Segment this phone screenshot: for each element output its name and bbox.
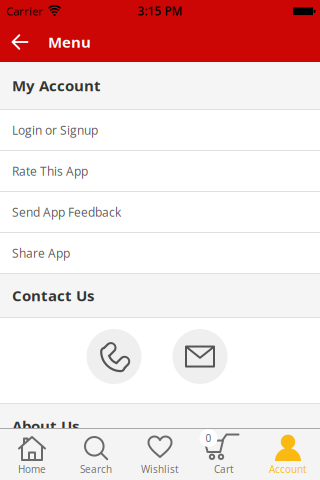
staticText: Share App bbox=[12, 245, 70, 261]
button[interactable]: Account bbox=[256, 429, 320, 480]
button[interactable]: Send App Feedback bbox=[0, 192, 320, 233]
button[interactable]: 0 bbox=[192, 429, 256, 480]
button[interactable]: Share App bbox=[0, 233, 320, 274]
staticText: 0 bbox=[205, 431, 211, 445]
staticText: Wishlist bbox=[141, 462, 179, 476]
button[interactable]: Search bbox=[64, 429, 128, 480]
button[interactable]: Home bbox=[0, 429, 64, 480]
staticText: Search bbox=[80, 462, 112, 476]
staticText: 3:15 PM bbox=[137, 3, 182, 19]
staticText: Contact Us bbox=[12, 285, 94, 306]
button[interactable]: Email us bbox=[172, 329, 227, 384]
staticText: Carrier bbox=[6, 3, 43, 19]
staticText: Home bbox=[18, 462, 46, 476]
staticText: About Us bbox=[12, 416, 79, 436]
button[interactable]: Wishlist bbox=[128, 429, 192, 480]
staticText: Account bbox=[269, 462, 307, 476]
staticText: My Account bbox=[12, 75, 101, 96]
button[interactable]: Login or Signup bbox=[0, 110, 320, 151]
button[interactable]: Call us bbox=[86, 329, 141, 384]
button[interactable]: Back bbox=[0, 34, 28, 50]
button[interactable]: Rate This App bbox=[0, 151, 320, 192]
staticText: Send App Feedback bbox=[12, 204, 121, 220]
staticText: Cart bbox=[214, 462, 234, 476]
staticText: Menu bbox=[48, 32, 91, 52]
staticText: Login or Signup bbox=[12, 122, 98, 138]
staticText: Rate This App bbox=[12, 163, 88, 179]
